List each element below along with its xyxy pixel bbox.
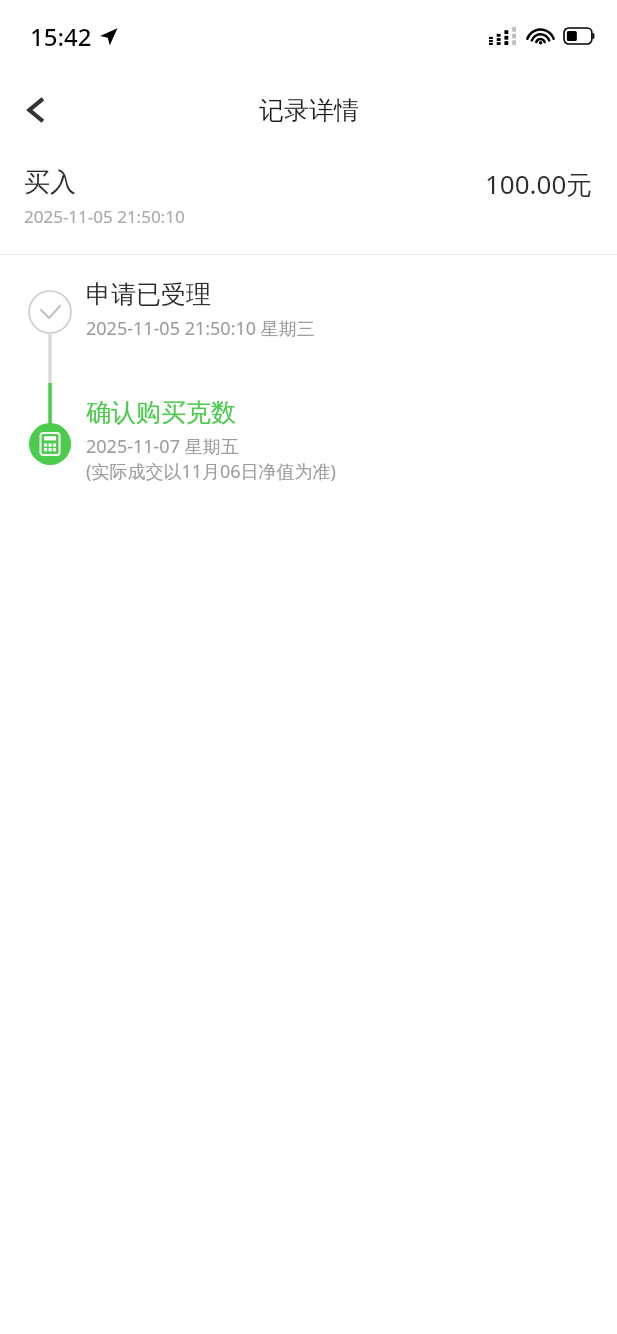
staticText: 申请已受理 (86, 279, 211, 310)
staticText: 记录详情 (259, 95, 359, 126)
staticText: 2025-11-05 21:50:10 星期三 (86, 316, 315, 341)
staticText: 15:42 (30, 20, 92, 53)
staticText: (实际成交以11月06日净值为准) (86, 459, 336, 484)
staticText: 确认购买克数 (86, 397, 236, 428)
staticText: 2025-11-07 星期五 (86, 434, 239, 459)
staticText: 买入 (24, 166, 76, 199)
staticText: 2025-11-05 21:50:10 (24, 205, 185, 228)
button[interactable]: Back (8, 82, 64, 138)
staticText: 100.00元 (485, 166, 593, 202)
